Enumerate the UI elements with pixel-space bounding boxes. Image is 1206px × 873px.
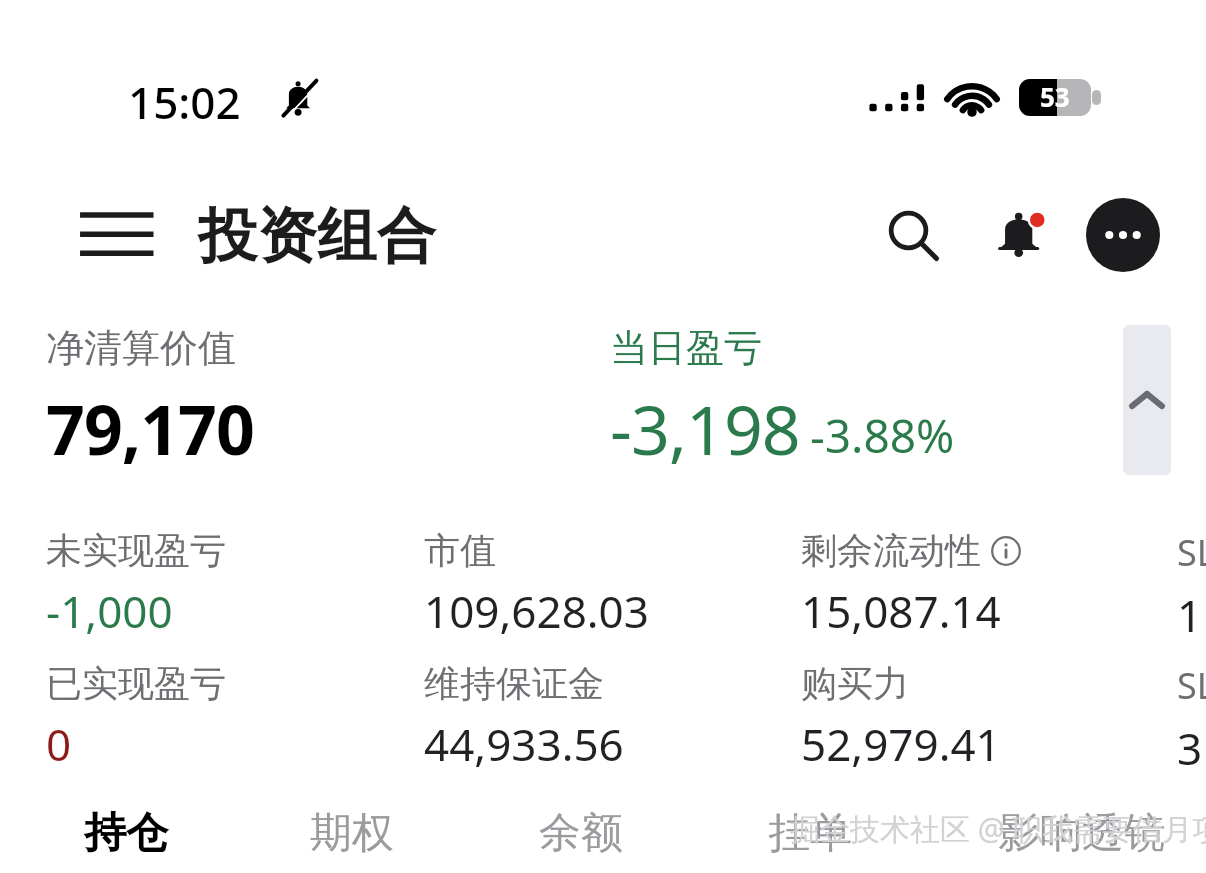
- button[interactable]: 剩余流动性: [801, 528, 1161, 641]
- staticText: SL: [1177, 528, 1206, 577]
- staticText: 44,933.56: [424, 714, 624, 774]
- staticText: 掘金技术社区 @ 职我需要借月项来: [790, 808, 1206, 849]
- staticText: -3,198: [610, 382, 800, 475]
- staticText: 净清算价值: [46, 324, 236, 372]
- staticText: 52,979.41: [801, 714, 1001, 774]
- staticText: 期权: [310, 807, 394, 860]
- staticText: 当日盈亏: [610, 324, 762, 372]
- staticText: 余额: [539, 807, 623, 860]
- staticText: -1,000: [46, 581, 173, 641]
- button[interactable]: Search: [876, 198, 950, 272]
- button[interactable]: More options: [1086, 198, 1160, 272]
- button[interactable]: 购买力: [801, 661, 1161, 774]
- staticText: 0: [46, 714, 72, 774]
- staticText: 15:02: [128, 72, 241, 132]
- staticText: 剩余流动性: [801, 528, 981, 573]
- staticText: -3.88%: [810, 404, 955, 467]
- button[interactable]: 影响透镜: [980, 793, 1184, 873]
- button[interactable]: 期权: [292, 793, 412, 873]
- button[interactable]: Notifications: [982, 196, 1060, 274]
- staticText: 影响透镜: [998, 807, 1166, 860]
- staticText: 市值: [424, 528, 496, 573]
- button[interactable]: 未实现盈亏: [46, 528, 406, 641]
- staticText: 已实现盈亏: [46, 661, 226, 706]
- button[interactable]: Menu: [72, 196, 162, 274]
- staticText: 53: [1040, 79, 1070, 114]
- button[interactable]: 已实现盈亏: [46, 661, 406, 774]
- staticText: 15,087.14: [801, 581, 1001, 641]
- staticText: SL: [1177, 661, 1206, 710]
- button[interactable]: 持仓: [66, 793, 186, 873]
- button[interactable]: Collapse summary: [1123, 325, 1171, 475]
- staticText: 3: [1177, 718, 1203, 778]
- staticText: 持仓: [84, 807, 168, 860]
- staticText: 购买力: [801, 661, 909, 706]
- staticText: 维持保证金: [424, 661, 604, 706]
- button[interactable]: 挂单: [750, 793, 870, 873]
- staticText: 79,170: [46, 382, 254, 475]
- button[interactable]: 市值: [424, 528, 784, 641]
- staticText: 未实现盈亏: [46, 528, 226, 573]
- staticText: 投资组合: [198, 199, 436, 273]
- staticText: 挂单: [768, 807, 852, 860]
- button[interactable]: SL: [1177, 528, 1206, 645]
- staticText: 1: [1177, 585, 1203, 645]
- staticText: 109,628.03: [424, 581, 649, 641]
- button[interactable]: 余额: [521, 793, 641, 873]
- button[interactable]: SL: [1177, 661, 1206, 778]
- button[interactable]: 维持保证金: [424, 661, 784, 774]
